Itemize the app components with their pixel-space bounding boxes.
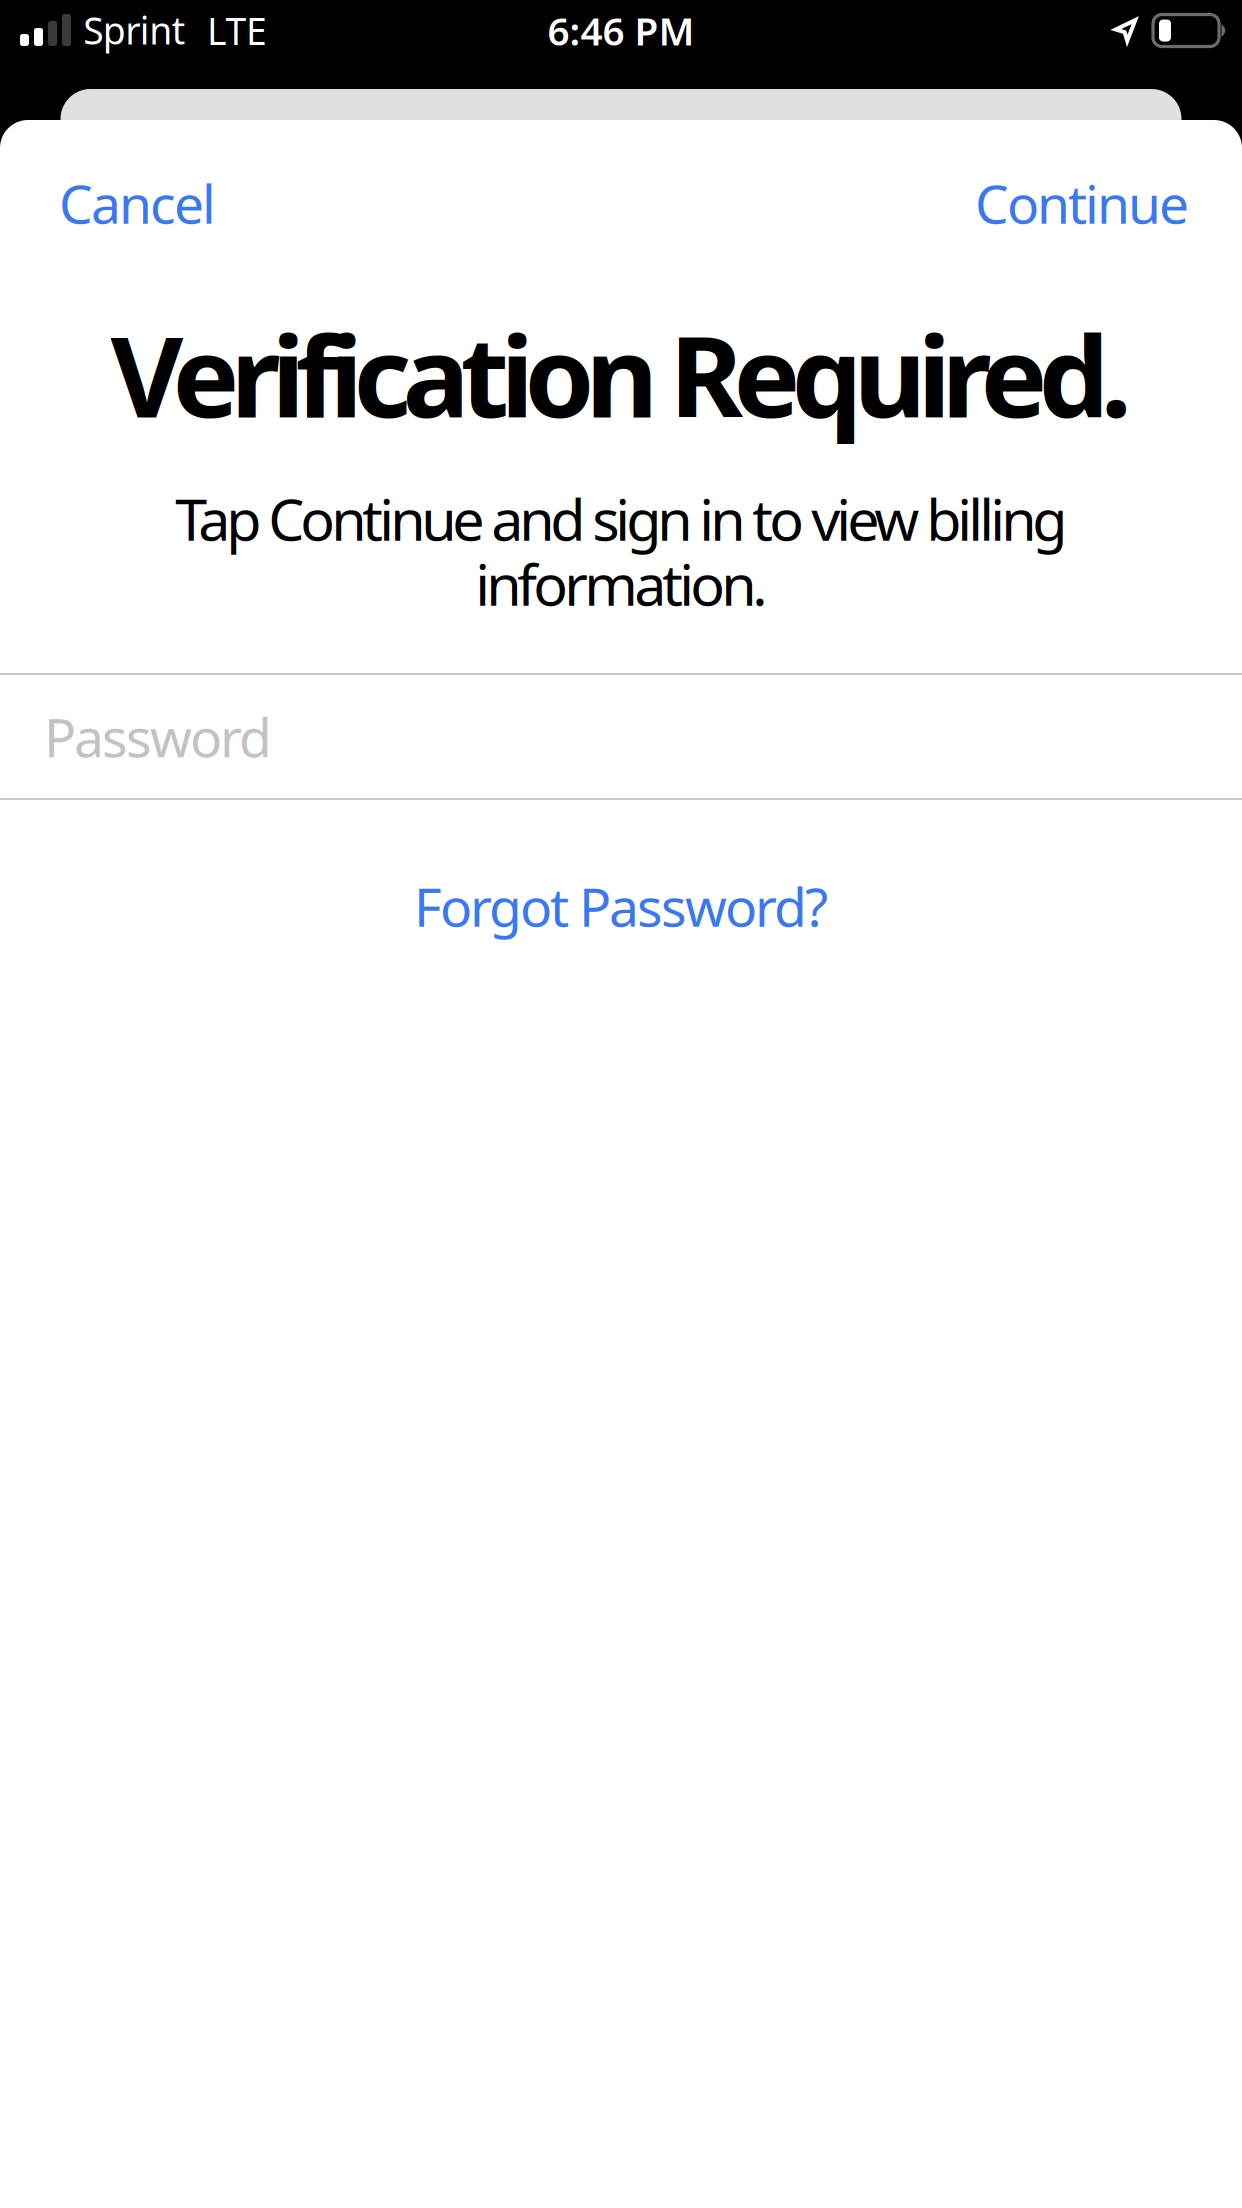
staticText: 6:46 PM: [547, 5, 694, 56]
staticText: Tap Continue and sign in to view billing…: [175, 480, 1067, 622]
button[interactable]: Password: [0, 673, 1242, 800]
staticText: Continue: [975, 168, 1189, 238]
staticText: Sprint: [83, 5, 185, 55]
button[interactable]: Continue: [931, 137, 1225, 269]
button[interactable]: Forgot Password?: [361, 840, 881, 972]
staticText: Verification Required.: [110, 300, 1131, 448]
staticText: Cancel: [59, 168, 216, 238]
staticText: Forgot Password?: [414, 871, 828, 941]
staticText: LTE: [207, 6, 267, 55]
button[interactable]: Cancel: [23, 137, 287, 269]
staticText: Password: [44, 701, 272, 772]
